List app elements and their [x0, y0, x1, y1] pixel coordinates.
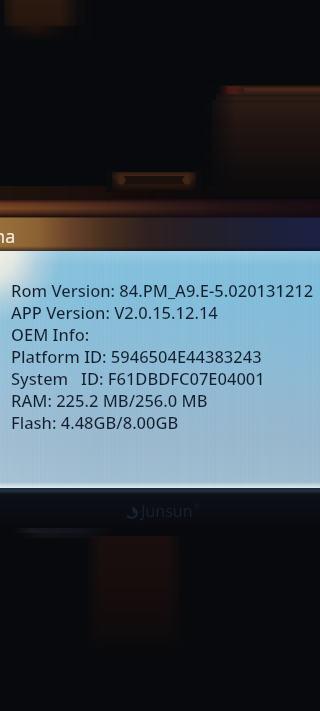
- staticText: OEM Info:: [11, 323, 90, 345]
- staticText: RAM: 225.2 MB/256.0 MB: [11, 389, 208, 411]
- staticText: Flash: 4.48GB/8.00GB: [11, 411, 179, 433]
- staticText: Junsun: [141, 500, 193, 522]
- staticText: System ID: F61DBDFC07E04001: [11, 367, 265, 389]
- staticText: Rom Version: 84.PM_A9.E-5.020131212: [11, 279, 314, 301]
- button[interactable]: Junsun: [0, 488, 320, 528]
- staticText: Platform ID: 5946504E44383243: [11, 345, 262, 367]
- staticText: APP Version: V2.0.15.12.14: [11, 301, 218, 323]
- staticText: ana: [0, 224, 16, 249]
- staticText: ®: [194, 502, 200, 512]
- button[interactable]: Open navigation menu: [0, 217, 34, 251]
